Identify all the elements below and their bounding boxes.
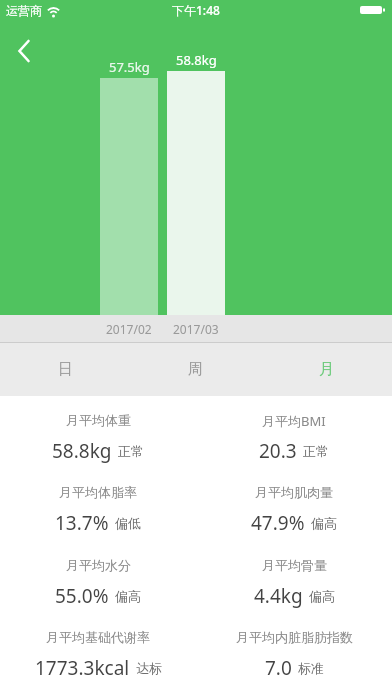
button[interactable]: 月平均内脏脂肪指数 (196, 629, 392, 645)
staticText: 下午1:48 (172, 2, 220, 18)
staticText: 运营商 (6, 3, 42, 18)
staticText: 月平均内脏脂肪指数 (236, 629, 353, 645)
staticText: 月平均BMI (262, 412, 326, 430)
staticText: 58.8kg (52, 438, 112, 464)
button[interactable]: 月平均肌肉量 (196, 484, 392, 500)
staticText: 1773.3kcal (35, 655, 130, 681)
staticText: 月平均体脂率 (59, 484, 137, 500)
button[interactable] (8, 35, 44, 69)
staticText: 月平均肌肉量 (255, 484, 333, 500)
staticText: 7.0 (265, 655, 292, 681)
staticText: 偏高 (311, 515, 337, 531)
button[interactable]: 日 (0, 343, 130, 396)
button[interactable]: 月平均BMI (196, 412, 392, 430)
staticText: 偏高 (309, 588, 335, 604)
staticText: 达标 (136, 660, 162, 676)
button[interactable]: 月平均体脂率 (0, 484, 196, 500)
button[interactable]: 周 (130, 343, 261, 396)
staticText: 标准 (298, 660, 324, 676)
staticText: 2017/03 (173, 321, 219, 337)
staticText: 月平均骨量 (262, 557, 327, 573)
staticText: 日 (58, 360, 73, 379)
staticText: 2017/02 (106, 321, 152, 337)
staticText: 20.3 (259, 438, 297, 464)
staticText: 57.5kg (109, 58, 150, 76)
button[interactable]: 月 (261, 343, 392, 396)
staticText: 偏高 (115, 588, 141, 604)
staticText: 月平均水分 (66, 557, 131, 573)
button[interactable]: 月平均骨量 (196, 557, 392, 573)
staticText: 13.7% (55, 510, 109, 536)
button[interactable]: 月平均水分 (0, 557, 196, 573)
staticText: 月平均体重 (66, 412, 131, 428)
staticText: 偏低 (115, 515, 141, 531)
staticText: 周 (188, 360, 203, 379)
button[interactable]: 月平均体重 (0, 412, 196, 428)
staticText: 月平均基础代谢率 (46, 629, 150, 645)
staticText: 月 (319, 360, 334, 379)
button[interactable]: 月平均基础代谢率 (0, 629, 196, 645)
staticText: 正常 (303, 443, 329, 459)
staticText: 47.9% (251, 510, 305, 536)
staticText: 58.8kg (176, 51, 217, 69)
staticText: 4.4kg (254, 583, 303, 609)
staticText: 55.0% (55, 583, 109, 609)
staticText: 正常 (118, 443, 144, 459)
